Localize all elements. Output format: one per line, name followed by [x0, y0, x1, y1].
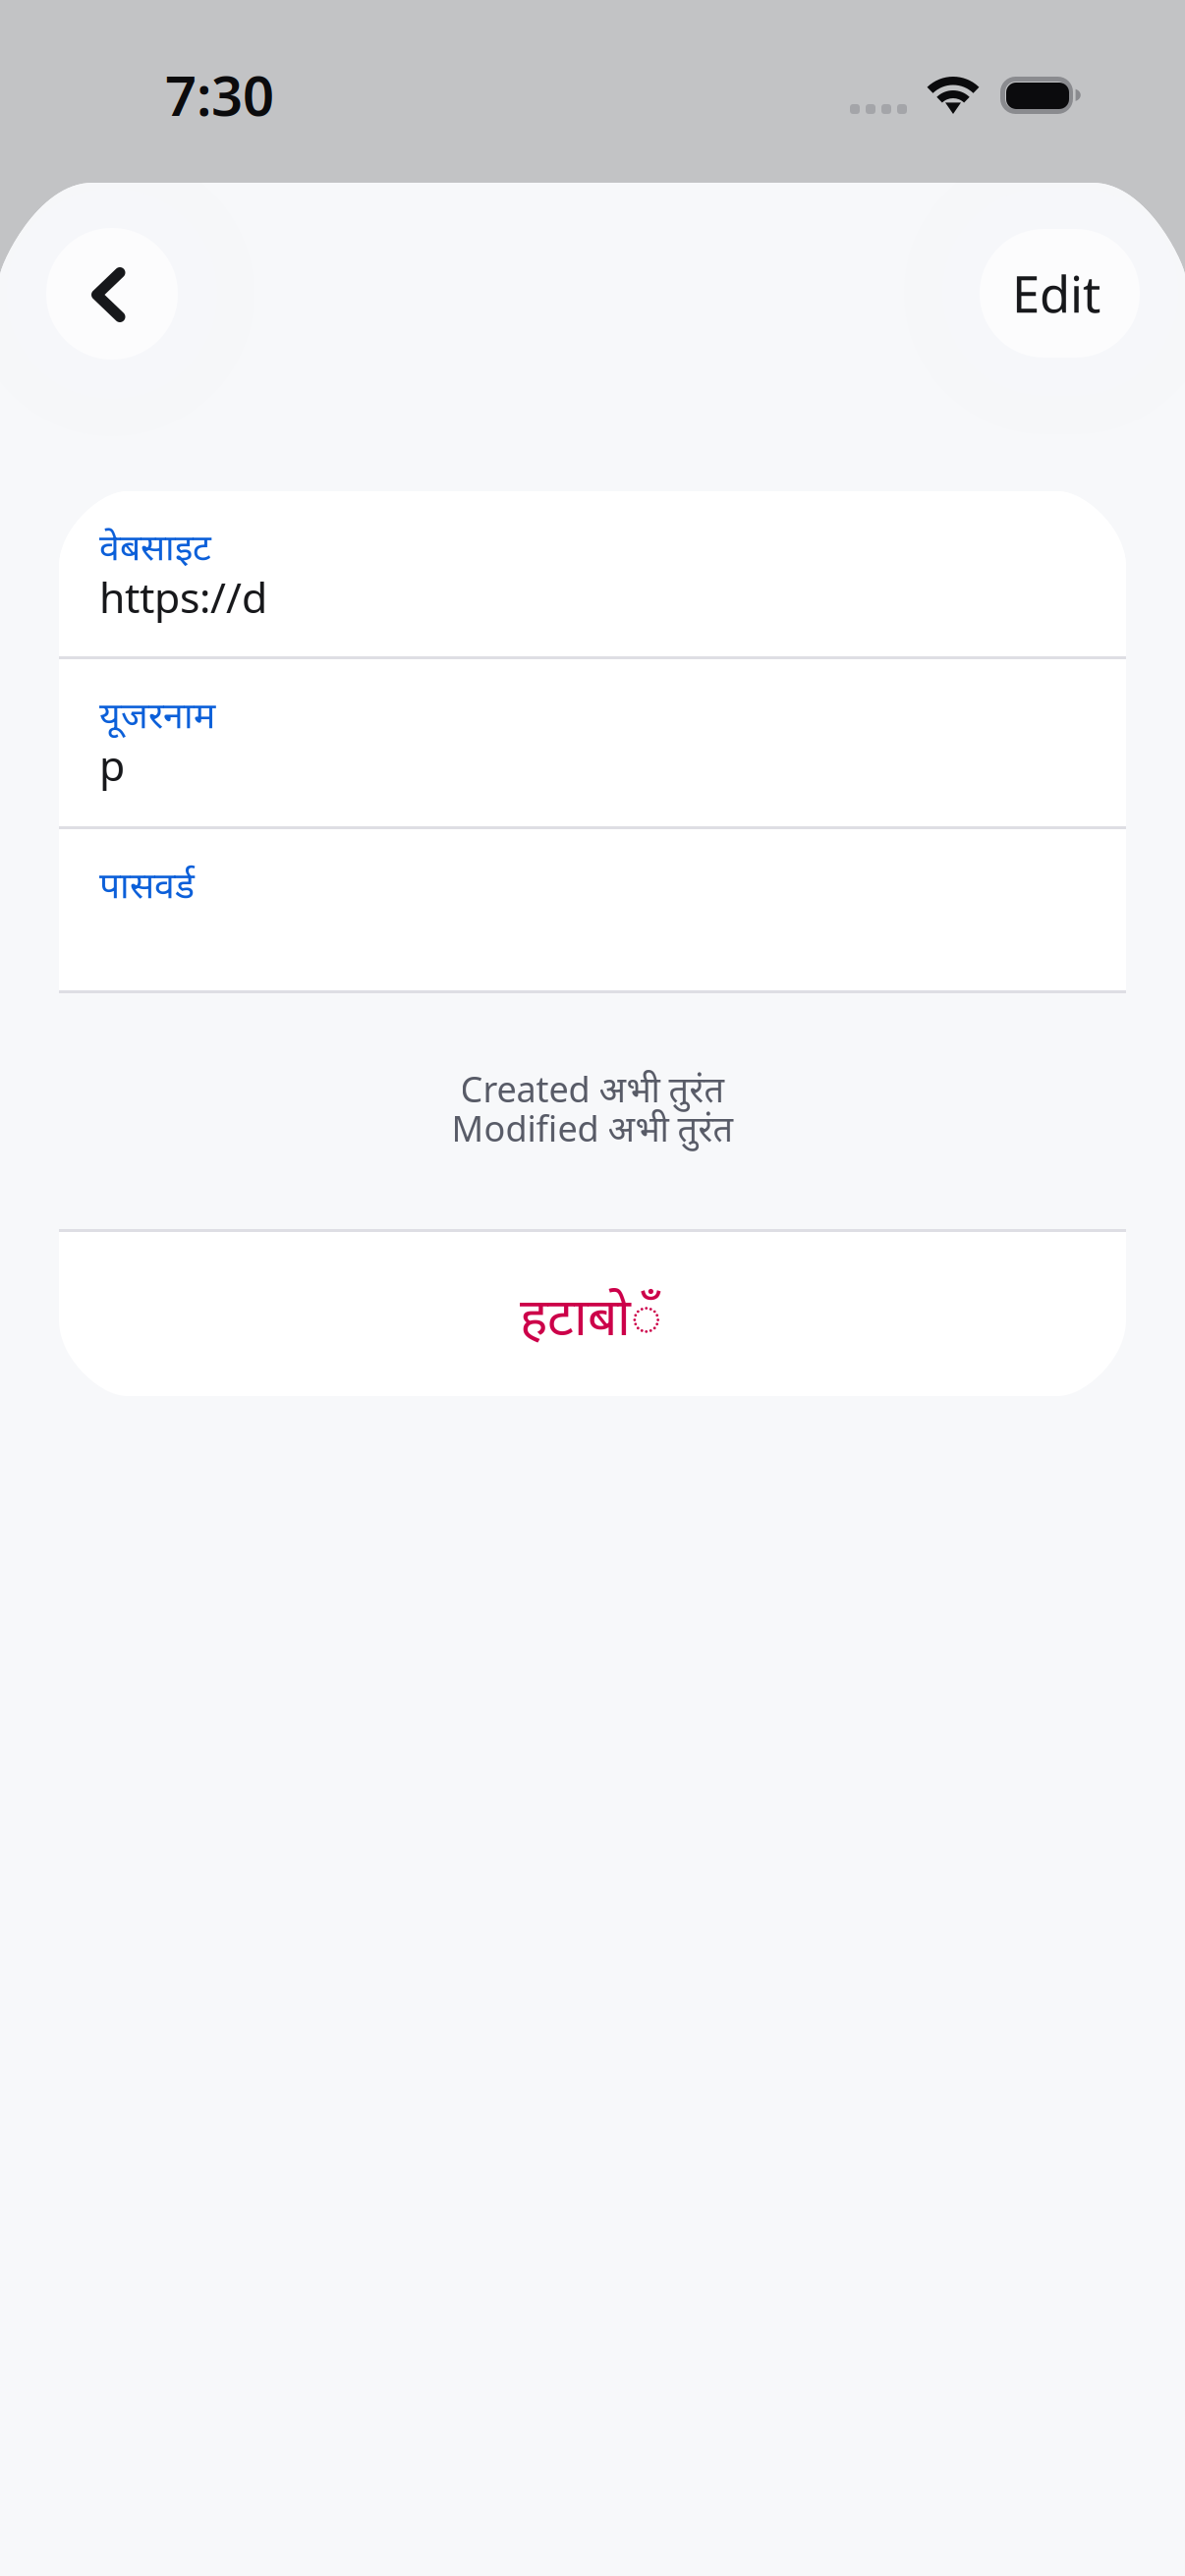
- button[interactable]: हटाबो​ँ: [59, 1232, 1126, 1396]
- staticText: p: [99, 737, 125, 793]
- staticText: हटाबो​ँ: [520, 1280, 662, 1350]
- button[interactable]: वेबसाइट: [59, 491, 1126, 656]
- button[interactable]: यूजरनाम: [59, 659, 1126, 826]
- staticText: पासवर्ड: [99, 860, 195, 908]
- staticText: https://d: [99, 569, 267, 625]
- staticText: वेबसाइट: [99, 522, 211, 570]
- staticText: यूजरनाम: [99, 690, 215, 738]
- staticText: Created अभी तुरंत: [460, 1065, 725, 1112]
- staticText: Modified अभी तुरंत: [451, 1104, 734, 1151]
- button[interactable]: पासवर्ड: [59, 829, 1126, 990]
- staticText: 7:30: [165, 58, 274, 131]
- button[interactable]: Back: [46, 228, 178, 360]
- button[interactable]: Edit: [980, 229, 1140, 358]
- staticText: Edit: [1012, 260, 1100, 326]
